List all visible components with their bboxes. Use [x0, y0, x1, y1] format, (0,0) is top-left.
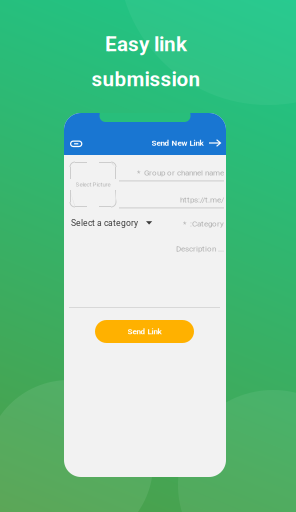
button[interactable]: Send New Link: [148, 135, 225, 151]
staticText: Description ...: [176, 244, 224, 253]
staticText: Select a category: [71, 218, 138, 228]
button[interactable]: Select Picture: [70, 162, 116, 207]
staticText: Send Link: [127, 327, 161, 336]
staticText: Send New Link: [151, 138, 203, 148]
button[interactable]: Select a category: [71, 218, 152, 228]
staticText: https://t.me/: [180, 195, 224, 204]
staticText: Easy link: [105, 32, 187, 56]
staticText: submission: [91, 67, 200, 91]
staticText: * Group or channel name: [137, 168, 224, 177]
staticText: Select Picture: [75, 181, 110, 188]
staticText: * :Category: [183, 219, 224, 228]
button[interactable]: Links: [66, 136, 86, 151]
button[interactable]: Send Link: [95, 320, 194, 343]
